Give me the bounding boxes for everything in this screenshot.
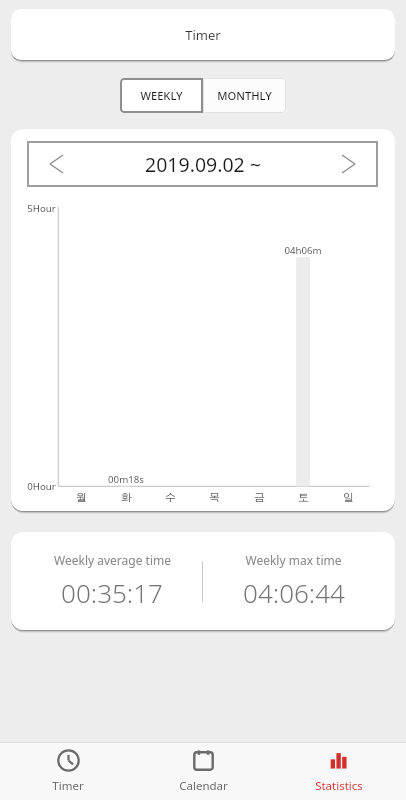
staticText: 목 <box>209 490 220 504</box>
button[interactable]: Previous week <box>27 141 86 187</box>
staticText: 04:06:44 <box>243 575 345 610</box>
staticText: 5Hour <box>27 202 56 215</box>
staticText: Weekly max time <box>245 552 342 568</box>
staticText: 금 <box>254 490 265 504</box>
staticText: Calendar <box>179 778 228 794</box>
button[interactable]: MONTHLY <box>203 78 286 113</box>
staticText: 00:35:17 <box>61 575 163 610</box>
button[interactable]: Timer <box>11 9 395 60</box>
staticText: 00m18s <box>108 473 144 486</box>
staticText: 0Hour <box>27 480 56 493</box>
staticText: Timer <box>185 26 221 44</box>
staticText: Timer <box>52 778 84 794</box>
button[interactable]: Statistics <box>271 742 406 800</box>
staticText: WEEKLY <box>140 88 183 103</box>
staticText: Statistics <box>315 778 363 794</box>
staticText: 2019.09.02 ~ <box>145 151 261 178</box>
staticText: 화 <box>121 490 132 504</box>
button[interactable]: WEEKLY <box>120 78 203 113</box>
staticText: Weekly average time <box>54 552 171 568</box>
staticText: 월 <box>76 490 87 504</box>
button[interactable]: Timer <box>0 742 136 800</box>
staticText: 일 <box>343 490 354 504</box>
staticText: 토 <box>298 490 309 504</box>
staticText: 수 <box>165 490 176 504</box>
button[interactable]: Calendar <box>136 742 271 800</box>
button[interactable]: Next week <box>319 141 378 187</box>
staticText: MONTHLY <box>217 88 272 103</box>
staticText: 04h06m <box>284 244 322 257</box>
